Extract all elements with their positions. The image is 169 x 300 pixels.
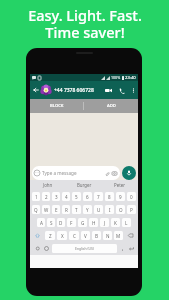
staticText: Burger — [77, 182, 92, 188]
staticText: BLOCK — [50, 103, 64, 109]
button[interactable]: N — [103, 231, 112, 240]
button[interactable]: Record voice message — [122, 166, 136, 180]
button[interactable]: Back — [32, 86, 40, 94]
button[interactable]: D — [57, 218, 65, 227]
button[interactable]: 1 — [32, 192, 40, 201]
button[interactable]: back — [125, 231, 136, 240]
button[interactable]: 5 — [72, 192, 81, 201]
button[interactable]: A — [37, 218, 45, 227]
button[interactable]: B — [92, 231, 101, 240]
staticText: K — [114, 220, 117, 226]
button[interactable]: Y — [83, 205, 92, 214]
other: Attach — [105, 171, 110, 176]
staticText: John — [43, 182, 53, 188]
button[interactable]: H — [89, 218, 98, 227]
button[interactable]: G — [78, 218, 87, 227]
staticText: F — [70, 220, 73, 226]
staticText: S — [50, 220, 53, 226]
button[interactable]: 3 — [52, 192, 60, 201]
staticText: V — [84, 233, 87, 239]
button[interactable]: More options — [129, 86, 137, 94]
staticText: 9 — [119, 194, 122, 200]
staticText: ADD — [107, 103, 116, 109]
button[interactable]: Q — [32, 205, 40, 214]
staticText: Y — [86, 207, 89, 213]
staticText: Time saver! — [45, 22, 125, 42]
staticText: L — [125, 220, 128, 226]
button[interactable]: 2 — [42, 192, 50, 201]
button[interactable]: U — [94, 205, 103, 214]
button[interactable]: Z — [45, 231, 55, 240]
staticText: W — [44, 207, 49, 213]
button[interactable]: K — [111, 218, 120, 227]
button[interactable]: J — [100, 218, 109, 227]
button[interactable]: 4 — [62, 192, 70, 201]
staticText: 3 — [55, 194, 58, 200]
button[interactable]: Type a message — [34, 166, 118, 180]
staticText: 1 — [35, 194, 38, 200]
button[interactable]: W — [42, 205, 50, 214]
staticText: X — [61, 233, 64, 239]
button[interactable]: P — [127, 205, 136, 214]
staticText: 0 — [130, 194, 133, 200]
button[interactable]: E — [52, 205, 60, 214]
staticText: P — [130, 207, 133, 213]
other: Camera — [112, 171, 117, 176]
button[interactable]: John — [30, 180, 66, 190]
staticText: 4 — [65, 194, 68, 200]
staticText: N — [106, 233, 110, 239]
staticText: Z — [49, 233, 52, 239]
button[interactable]: sym — [32, 244, 41, 253]
staticText: A — [40, 220, 43, 226]
staticText: D — [59, 220, 63, 226]
button[interactable]: 8 — [105, 192, 114, 201]
staticText: Peter — [114, 182, 126, 188]
staticText: H — [92, 220, 96, 226]
button[interactable]: F — [67, 218, 76, 227]
button[interactable]: Burger — [66, 180, 102, 190]
button[interactable]: S — [47, 218, 55, 227]
button[interactable]: 6 — [83, 192, 92, 201]
staticText: I — [109, 207, 111, 213]
staticText: G — [81, 220, 85, 226]
button[interactable]: I — [105, 205, 114, 214]
button[interactable]: shift — [32, 231, 43, 240]
button[interactable]: BLOCK — [30, 99, 83, 113]
button[interactable]: Video call — [104, 86, 113, 95]
staticText: O — [119, 207, 123, 213]
staticText: M — [116, 233, 121, 239]
button[interactable]: O — [116, 205, 125, 214]
button[interactable]: C — [69, 231, 79, 240]
staticText: +44 7378 606728 — [54, 87, 94, 94]
button[interactable]: M — [114, 231, 123, 240]
button[interactable]: L — [122, 218, 131, 227]
staticText: R — [65, 207, 68, 213]
staticText: English (US) — [75, 246, 94, 251]
button[interactable]: 0 — [127, 192, 136, 201]
staticText: 7 — [97, 194, 100, 200]
staticText: J — [104, 220, 106, 226]
staticText: 6 — [86, 194, 89, 200]
staticText: 2 — [45, 194, 48, 200]
button[interactable]: emoji — [43, 244, 50, 253]
button[interactable]: Peter — [102, 180, 138, 190]
button[interactable]: English (US) — [52, 244, 117, 253]
staticText: Type a message — [42, 170, 77, 176]
button[interactable]: X — [57, 231, 67, 240]
staticText: Easy. Light. Fast. — [28, 5, 142, 25]
staticText: E — [55, 207, 58, 213]
button[interactable]: V — [81, 231, 90, 240]
button[interactable]: dot — [119, 244, 125, 253]
button[interactable]: enter — [127, 244, 136, 253]
staticText: 5 — [75, 194, 78, 200]
staticText: C — [73, 233, 76, 239]
button[interactable]: T — [72, 205, 81, 214]
button[interactable]: 7 — [94, 192, 103, 201]
button[interactable]: ADD — [84, 99, 138, 113]
staticText: B — [95, 233, 98, 239]
button[interactable]: Call — [117, 86, 126, 95]
staticText: Q — [34, 207, 38, 213]
staticText: 100% — [111, 75, 121, 80]
button[interactable]: R — [62, 205, 70, 214]
button[interactable]: 9 — [116, 192, 125, 201]
